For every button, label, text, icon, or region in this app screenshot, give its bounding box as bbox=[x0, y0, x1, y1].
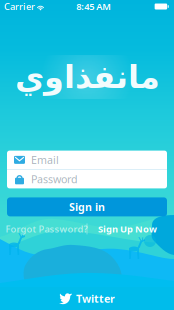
staticText: Twitter bbox=[76, 291, 115, 306]
staticText: Forgot Password? bbox=[6, 223, 88, 235]
staticText: Carrier bbox=[4, 0, 35, 13]
button[interactable]: Sign in bbox=[7, 197, 167, 216]
staticText: Email bbox=[31, 153, 59, 167]
button[interactable]: Twitter bbox=[0, 287, 174, 310]
staticText: Sign in bbox=[69, 200, 105, 214]
staticText: Sign Up Now bbox=[98, 223, 157, 235]
staticText: مانفذاوي bbox=[14, 59, 159, 95]
staticText: 8:45 AM bbox=[76, 0, 111, 13]
staticText: Password bbox=[31, 172, 78, 186]
button[interactable]: Forgot Password? bbox=[7, 222, 87, 235]
button[interactable]: Sign Up Now bbox=[87, 222, 167, 235]
